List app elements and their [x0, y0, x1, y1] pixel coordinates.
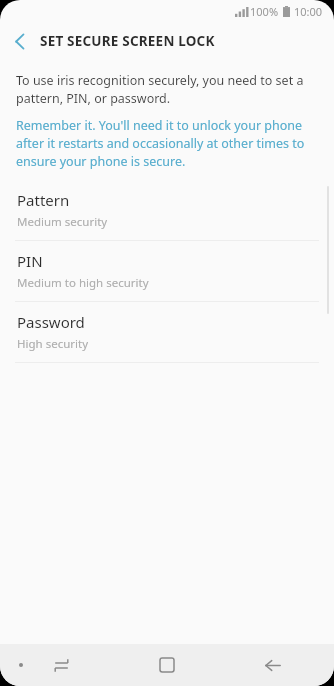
button[interactable]: Home [145, 644, 189, 686]
staticText: PIN [17, 251, 43, 271]
button[interactable]: Back [251, 644, 295, 686]
staticText: Remember it. You'll need it to unlock yo… [16, 117, 320, 170]
button[interactable]: Password [0, 302, 334, 362]
button[interactable]: PIN [0, 241, 334, 301]
staticText: To use iris recognition securely, you ne… [16, 72, 320, 107]
button[interactable]: Recents [39, 644, 83, 686]
staticText: SET SECURE SCREEN LOCK [40, 32, 215, 50]
staticText: Pattern [17, 190, 70, 210]
staticText: Medium to high security [17, 275, 149, 291]
button[interactable]: Pattern [0, 180, 334, 240]
staticText: 10:00 [294, 4, 323, 19]
staticText: Password [17, 312, 85, 332]
staticText: Medium security [17, 214, 108, 230]
button[interactable]: Back [0, 22, 40, 60]
staticText: 100% [250, 4, 279, 19]
staticText: High security [17, 336, 89, 352]
